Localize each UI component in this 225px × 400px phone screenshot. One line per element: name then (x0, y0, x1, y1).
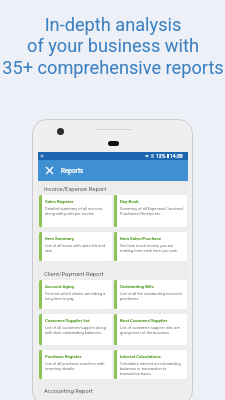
staticText: 14:30 (170, 153, 183, 159)
button[interactable]: Interest Calculations (114, 350, 187, 379)
staticText: Reports (61, 167, 84, 175)
staticText: Accounting Report (44, 388, 93, 395)
staticText: Calculates interest on outstanding balan… (120, 361, 185, 376)
button[interactable]: Item Summary (39, 232, 112, 261)
staticText: Account Aging (45, 284, 75, 289)
staticText: Best Customer/Supplier (120, 318, 168, 323)
staticText: Day Book (120, 199, 139, 204)
staticText: Detailed summary of all invoices along w… (45, 206, 110, 216)
staticText: Customer/Supplier list (45, 318, 90, 323)
staticText: List of all items with units left and ra… (45, 243, 110, 253)
staticText: Sales Register (45, 199, 74, 204)
staticText: List of all customer/supplier along with… (45, 325, 110, 335)
button[interactable]: Day Book (114, 195, 187, 227)
staticText: In-depth analysis of your business with … (2, 14, 224, 79)
staticText: Invoice/Expense Report (44, 186, 107, 193)
staticText: Item Sales/Purchase (120, 236, 162, 241)
staticText: Outstanding Bills (120, 284, 154, 289)
staticText: List of customer/supplier who are giving… (120, 325, 185, 335)
button[interactable]: Customer/Supplier list (39, 314, 112, 345)
staticText: Item Summary (45, 236, 75, 241)
staticText: List of all the outstanding invoices/pur… (120, 291, 185, 301)
button[interactable]: Item Sales/Purchase (114, 232, 187, 261)
staticText: See how much money you are making from e… (120, 243, 185, 253)
staticText: Interest Calculations (120, 354, 161, 359)
staticText: Summary of all Expenses/ Invoices/Purcha… (120, 206, 185, 216)
staticText: 12% (156, 153, 166, 159)
button[interactable]: Close (38, 160, 61, 181)
button[interactable]: Best Customer/Supplier (114, 314, 187, 345)
staticText: Find out which clients are taking a long… (45, 291, 110, 301)
button[interactable]: Account Aging (39, 280, 112, 309)
staticText: List of all purchase vouchers with inven… (45, 361, 110, 371)
button[interactable]: Sales Register (39, 195, 112, 227)
staticText: Purchase Register (45, 354, 82, 359)
button[interactable]: Purchase Register (39, 350, 112, 379)
staticText: Client/Payment Report (44, 271, 104, 278)
button[interactable]: Outstanding Bills (114, 280, 187, 309)
